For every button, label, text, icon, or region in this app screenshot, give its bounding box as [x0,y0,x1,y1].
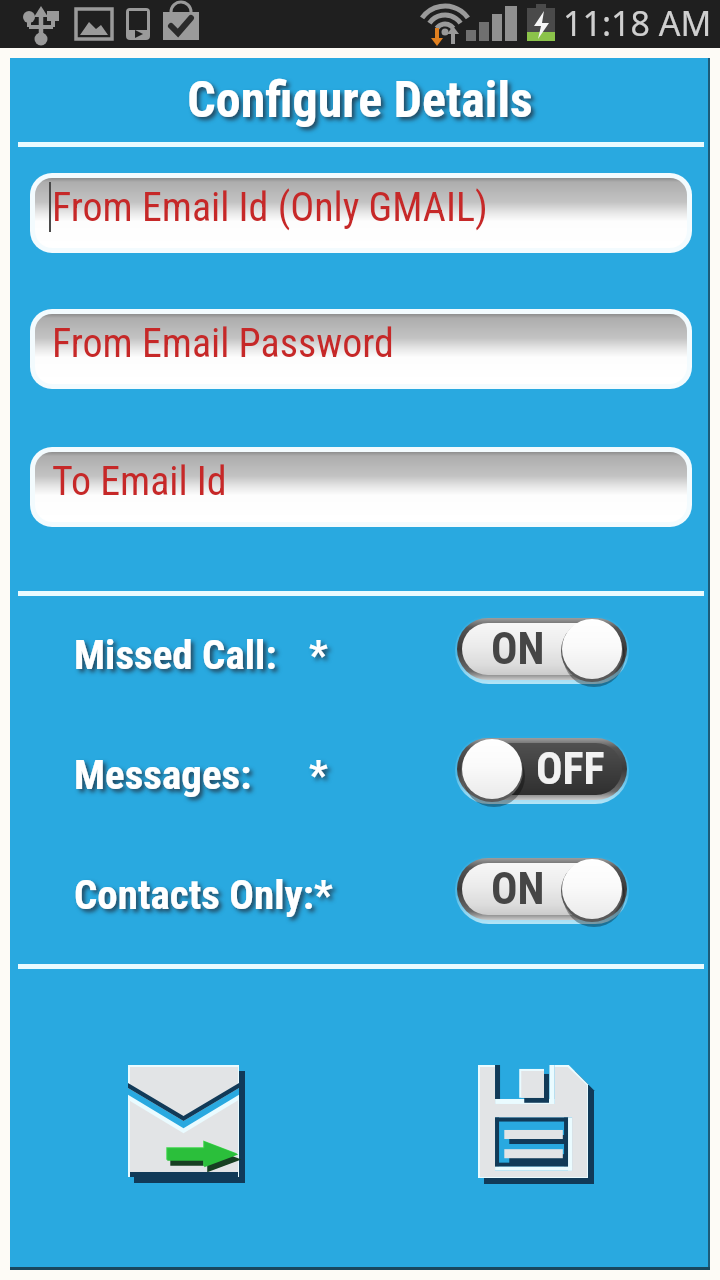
button[interactable]: Send Email [128,1065,245,1183]
staticText: Missed Call: [74,631,277,679]
staticText: From Email Id (Only GMAIL) [52,184,488,231]
staticText: OFF [536,743,605,795]
staticText: ON [491,623,545,675]
staticText: Configure Details [10,71,710,130]
button[interactable]: From Email Id (Only GMAIL) [35,178,687,248]
staticText: 11:18 AM [563,0,712,45]
staticText: ON [491,863,545,915]
staticText: Messages: [74,751,252,799]
staticText: * [309,751,328,799]
button[interactable]: Toggle on [457,614,627,688]
button[interactable]: Toggle off [457,734,627,808]
button[interactable]: To Email Id [35,452,687,522]
staticText: From Email Password [52,320,394,367]
staticText: * [309,631,328,679]
button[interactable]: Save [478,1065,594,1184]
staticText: To Email Id [52,458,227,505]
button[interactable]: From Email Password [35,314,687,384]
staticText: Contacts Only:* [74,871,333,919]
button[interactable]: Toggle on [457,854,627,928]
